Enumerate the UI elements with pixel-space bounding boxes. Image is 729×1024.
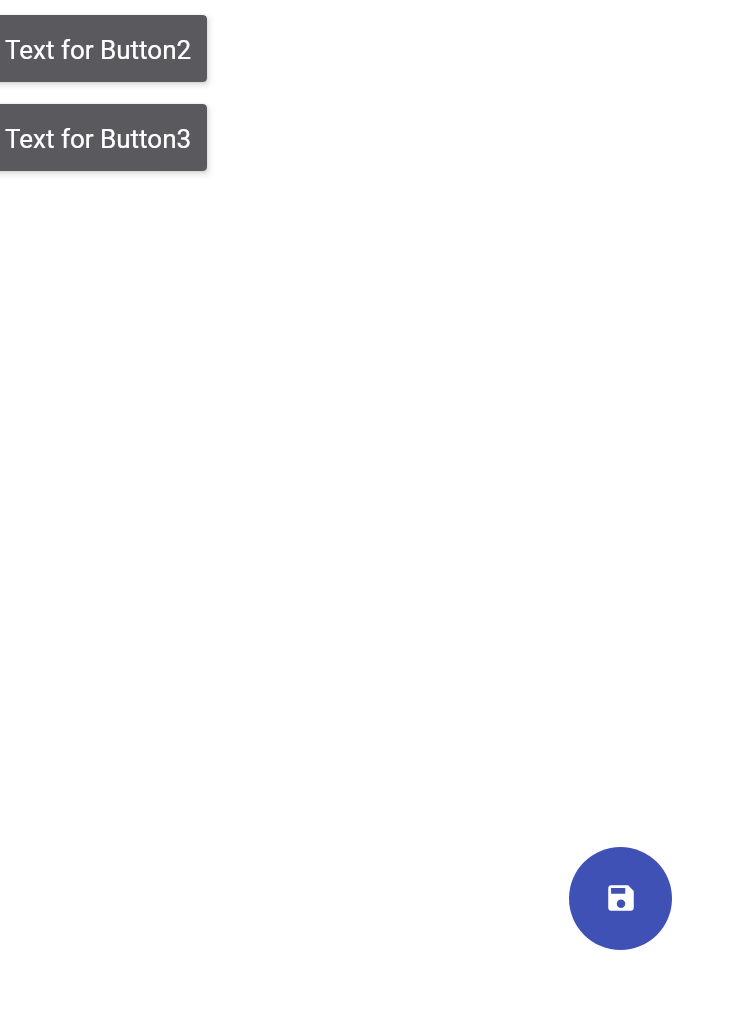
- staticText: Text for Button2: [5, 35, 192, 65]
- button[interactable]: Text for Button3: [0, 104, 207, 171]
- button[interactable]: Text for Button2: [0, 15, 207, 82]
- staticText: Text for Button3: [5, 124, 192, 154]
- button[interactable]: Save: [569, 847, 672, 950]
